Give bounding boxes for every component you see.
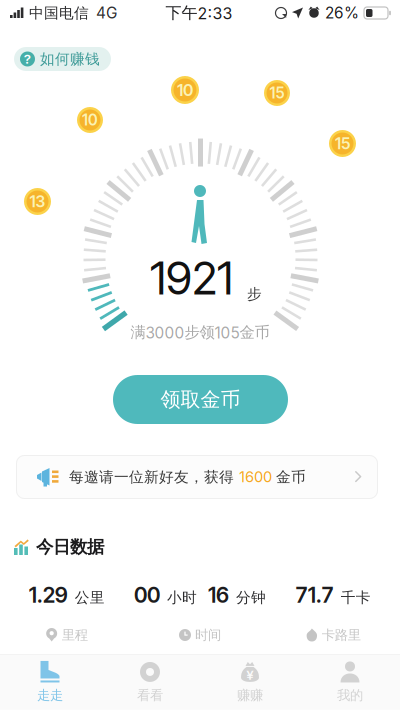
staticText: ? [24, 51, 31, 67]
staticText: 15 [269, 84, 284, 102]
staticText: 金币 [276, 468, 306, 486]
staticText: 10 [82, 111, 98, 129]
button[interactable]: 领取金币 [113, 375, 288, 424]
staticText: 13 [29, 192, 45, 211]
staticText: 26% [325, 4, 359, 22]
staticText: 今日数据 [36, 536, 104, 558]
staticText: 赚赚 [237, 687, 263, 704]
staticText: 16 [208, 582, 229, 608]
staticText: 1.29 [29, 582, 68, 608]
staticText: 15 [335, 134, 350, 153]
staticText: 时间 [195, 627, 221, 643]
button[interactable]: 走走 [0, 655, 100, 710]
staticText: 满3000步领105金币 [130, 323, 269, 342]
staticText: 71.7 [296, 582, 334, 608]
staticText: 1921 [150, 251, 233, 305]
staticText: 里程 [62, 627, 88, 643]
staticText: 公里 [75, 588, 105, 607]
staticText: 小时 [167, 588, 197, 607]
button[interactable]: 看看 [100, 655, 200, 710]
staticText: 中国电信 [29, 4, 89, 22]
staticText: 如何赚钱 [40, 50, 100, 68]
staticText: 10 [177, 80, 193, 100]
button[interactable]: ? [14, 47, 111, 71]
staticText: 我的 [337, 687, 363, 704]
staticText: 步 [247, 285, 262, 303]
staticText: 走走 [37, 687, 63, 704]
staticText: 看看 [137, 687, 163, 704]
button[interactable]: 每邀请一位新好友，获得 [16, 455, 378, 499]
staticText: 1600 [239, 468, 272, 486]
staticText: 领取金币 [160, 387, 240, 412]
staticText: 卡路里 [322, 627, 361, 643]
staticText: 每邀请一位新好友，获得 [69, 468, 234, 486]
button[interactable]: ¥ [200, 655, 300, 710]
staticText: 4G [96, 4, 117, 22]
staticText: 下午2:33 [165, 3, 232, 23]
staticText: 00 [134, 582, 160, 608]
button[interactable]: 我的 [300, 655, 400, 710]
staticText: ¥ [246, 667, 253, 683]
staticText: 分钟 [236, 588, 266, 607]
staticText: 千卡 [341, 588, 371, 607]
